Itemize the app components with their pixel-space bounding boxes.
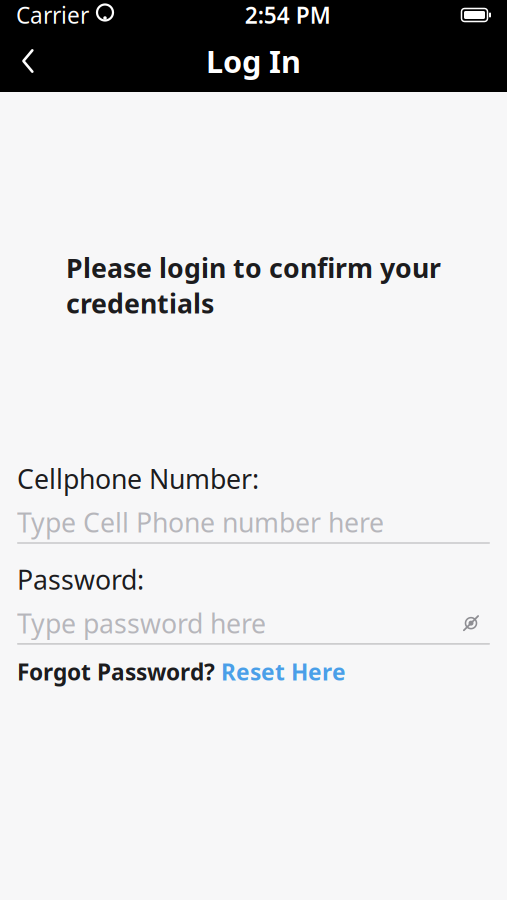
staticText: Cellphone Number: (17, 461, 259, 496)
staticText: Log In (206, 41, 301, 81)
staticText: Type Cell Phone number here (17, 504, 384, 540)
staticText: Type password here (17, 605, 266, 641)
staticText: Reset Here (221, 657, 346, 687)
staticText: 2:54 PM (245, 0, 331, 30)
button[interactable]: Type Cell Phone number here (17, 508, 490, 536)
button[interactable]: Type password here (17, 609, 452, 637)
staticText: Please login to confirm your credentials (66, 250, 441, 321)
button[interactable]: Show password (452, 609, 490, 637)
button[interactable]: Reset Here (221, 657, 346, 687)
staticText: Password: (17, 562, 144, 597)
button[interactable]: Back (0, 30, 56, 92)
staticText: Carrier (16, 0, 89, 30)
staticText: Forgot Password? (17, 657, 215, 687)
